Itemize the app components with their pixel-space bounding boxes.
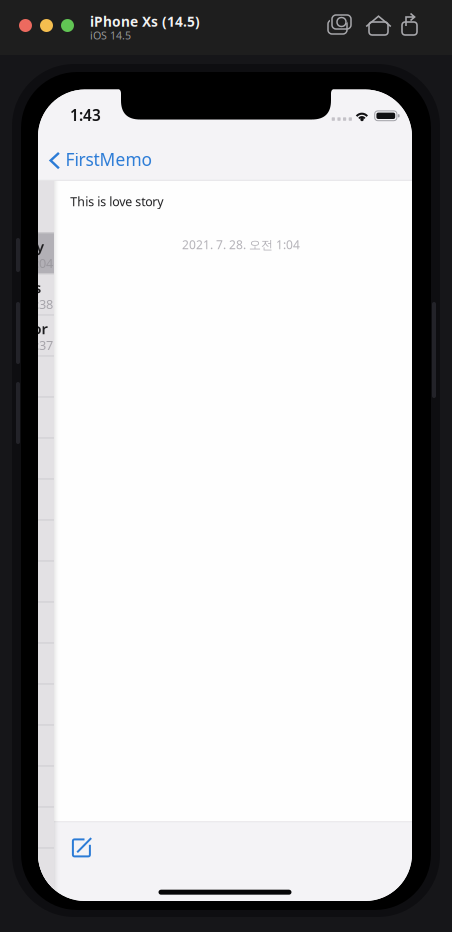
button[interactable]: Zoom — [0, 0, 452, 932]
staticText: iOS 14.5 — [90, 28, 131, 42]
button[interactable]: Minimize — [0, 0, 452, 932]
button[interactable]: Home — [0, 0, 452, 932]
staticText: 1:38 — [29, 295, 53, 313]
staticText: 1:43 — [70, 104, 101, 125]
staticText: 1:37 — [29, 336, 53, 354]
staticText: lor — [28, 318, 47, 338]
button[interactable]: Screenshot — [0, 0, 452, 932]
staticText: 2021. 7. 28. 오전 1:04 — [182, 236, 300, 253]
staticText: 1:04 — [29, 254, 53, 272]
staticText: s — [34, 277, 41, 297]
staticText: FirstMemo — [65, 147, 151, 171]
button[interactable]: Close — [0, 0, 452, 932]
button[interactable]: Compose — [38, 89, 412, 901]
button[interactable]: FirstMemo — [38, 89, 412, 901]
staticText: iPhone Xs (14.5) — [90, 12, 200, 31]
staticText: This is love story — [70, 193, 163, 210]
button[interactable]: Share — [0, 0, 452, 932]
staticText: y — [36, 236, 44, 256]
